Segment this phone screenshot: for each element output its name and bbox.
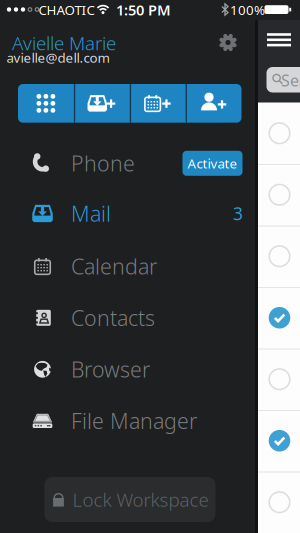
- staticText: 1:50 PM: [116, 0, 171, 20]
- button[interactable]: Menu: [258, 27, 300, 54]
- button[interactable]: Calendar: [0, 241, 255, 292]
- staticText: Contacts: [71, 304, 155, 332]
- staticText: Calendar: [71, 252, 157, 280]
- staticText: 3: [233, 202, 243, 225]
- button[interactable]: To-do item: [258, 472, 300, 532]
- button[interactable]: To-do item: [258, 164, 300, 225]
- button[interactable]: Settings: [214, 28, 242, 56]
- staticText: Mail: [71, 199, 111, 228]
- button[interactable]: Keypad: [18, 84, 74, 123]
- staticText: File Manager: [71, 407, 197, 435]
- button[interactable]: Phone: [0, 138, 255, 189]
- button[interactable]: To-do item: [258, 103, 300, 163]
- staticText: 100%: [230, 1, 265, 19]
- staticText: Avielle Marie: [12, 31, 116, 55]
- button[interactable]: To-do item: [258, 349, 300, 409]
- button[interactable]: Browser: [0, 344, 255, 395]
- button[interactable]: New email: [74, 84, 130, 123]
- staticText: Lock Workspace: [72, 487, 208, 512]
- button[interactable]: Lock Workspace: [44, 477, 215, 522]
- button[interactable]: To-do item: [258, 226, 300, 286]
- button[interactable]: Search: [266, 67, 300, 92]
- button[interactable]: File Manager: [0, 395, 255, 447]
- button[interactable]: Completed item: [258, 410, 300, 471]
- staticText: Activate: [187, 154, 237, 172]
- button[interactable]: Add contact: [186, 84, 241, 123]
- staticText: CHAOTIC: [38, 1, 94, 19]
- button[interactable]: Completed item: [258, 287, 300, 348]
- staticText: avielle@dell.com: [6, 49, 109, 66]
- button[interactable]: Activate: [182, 151, 242, 176]
- button[interactable]: Contacts: [0, 292, 255, 344]
- staticText: Browser: [71, 355, 150, 383]
- staticText: Phone: [71, 149, 135, 177]
- button[interactable]: Mail: [0, 188, 255, 239]
- staticText: Search: [281, 70, 300, 91]
- button[interactable]: New event: [130, 84, 186, 123]
